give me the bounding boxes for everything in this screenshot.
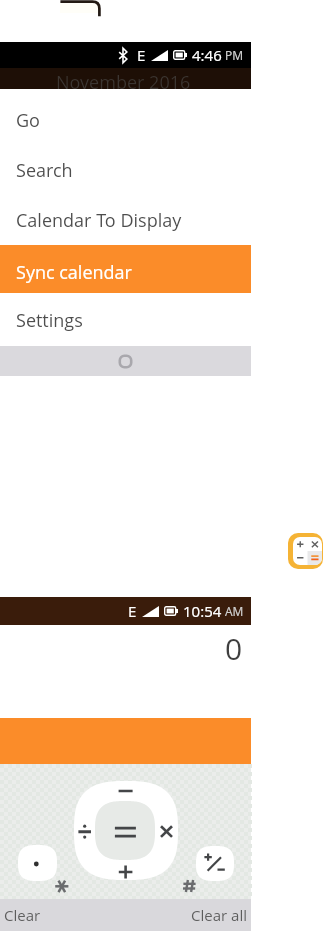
staticText: 0 — [225, 628, 243, 669]
button[interactable]: Home — [0, 346, 251, 376]
button[interactable]: Plus minus sign — [196, 846, 234, 881]
button[interactable]: Settings — [0, 293, 251, 346]
button[interactable]: Sync calendar — [0, 245, 251, 293]
staticText: Sync calendar — [16, 260, 132, 285]
staticText: Calendar To Display — [16, 208, 182, 233]
button[interactable]: Clear — [0, 899, 120, 931]
staticText: AM — [225, 603, 244, 619]
staticText: E — [128, 601, 137, 621]
button[interactable]: Calculator — [288, 533, 323, 569]
staticText: 10:54 — [183, 601, 222, 621]
button[interactable]: Calendar To Display — [0, 189, 251, 245]
button[interactable]: Equals — [95, 801, 155, 860]
button[interactable]: Asterisk key — [54, 879, 70, 895]
staticText: Settings — [16, 308, 83, 333]
button[interactable]: Decimal point — [18, 845, 57, 881]
staticText: Search — [16, 158, 73, 183]
staticText: PM — [225, 47, 244, 63]
button[interactable]: Go — [0, 89, 251, 139]
staticText: Clear — [4, 905, 41, 925]
button[interactable]: Search — [0, 139, 251, 189]
staticText: Clear all — [191, 905, 247, 925]
staticText: 4:46 — [192, 45, 222, 65]
staticText: E — [137, 45, 146, 65]
button[interactable]: Hash key — [182, 879, 198, 895]
staticText: November 2016 — [56, 70, 191, 91]
staticText: Go — [16, 108, 40, 133]
button[interactable]: Clear all — [131, 899, 251, 931]
